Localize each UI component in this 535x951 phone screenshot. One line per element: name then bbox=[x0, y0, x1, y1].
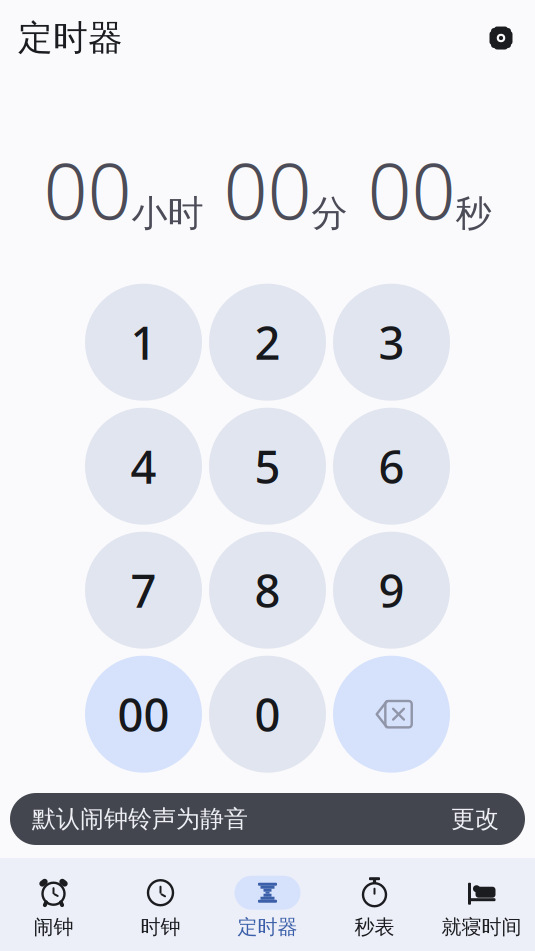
button[interactable]: 1 bbox=[85, 284, 202, 401]
staticText: 秒表 bbox=[354, 915, 394, 939]
staticText: 定时器 bbox=[18, 17, 123, 59]
button[interactable]: 设置 bbox=[481, 18, 521, 58]
staticText: 秒 bbox=[455, 191, 491, 236]
staticText: 00 bbox=[43, 138, 131, 241]
staticText: 1 bbox=[130, 312, 156, 372]
button[interactable]: 删除 bbox=[333, 656, 450, 773]
staticText: 闹钟 bbox=[33, 915, 73, 939]
button[interactable]: 定时器 bbox=[214, 868, 321, 947]
button[interactable]: 7 bbox=[85, 532, 202, 649]
button[interactable]: 00 bbox=[85, 656, 202, 773]
button[interactable]: 4 bbox=[85, 408, 202, 525]
staticText: 更改 bbox=[451, 804, 499, 834]
staticText: 00 bbox=[367, 138, 455, 241]
button[interactable]: 2 bbox=[209, 284, 326, 401]
staticText: 3 bbox=[378, 312, 404, 372]
button[interactable]: 9 bbox=[333, 532, 450, 649]
button[interactable]: 更改 bbox=[447, 800, 503, 838]
button[interactable]: 0 bbox=[209, 656, 326, 773]
button[interactable]: 时钟 bbox=[107, 868, 214, 947]
button[interactable]: 就寝时间 bbox=[428, 868, 535, 947]
button[interactable]: 3 bbox=[333, 284, 450, 401]
staticText: 7 bbox=[130, 560, 156, 620]
staticText: 0 bbox=[254, 684, 280, 744]
staticText: 9 bbox=[378, 560, 404, 620]
button[interactable]: 闹钟 bbox=[0, 868, 107, 947]
staticText: 时钟 bbox=[140, 915, 180, 939]
staticText: 00 bbox=[117, 684, 169, 744]
staticText: 小时 bbox=[131, 191, 203, 236]
staticText: 默认闹钟铃声为静音 bbox=[32, 804, 248, 834]
staticText: 就寝时间 bbox=[441, 915, 521, 939]
staticText: 5 bbox=[254, 436, 280, 496]
staticText: 2 bbox=[254, 312, 280, 372]
staticText: 00 bbox=[223, 138, 311, 241]
staticText: 分 bbox=[311, 191, 347, 236]
staticText: 8 bbox=[254, 560, 280, 620]
button[interactable]: 8 bbox=[209, 532, 326, 649]
staticText: 6 bbox=[378, 436, 404, 496]
button[interactable]: 5 bbox=[209, 408, 326, 525]
button[interactable]: 6 bbox=[333, 408, 450, 525]
button[interactable]: 秒表 bbox=[321, 868, 428, 947]
staticText: 4 bbox=[130, 436, 156, 496]
staticText: 定时器 bbox=[237, 915, 297, 939]
